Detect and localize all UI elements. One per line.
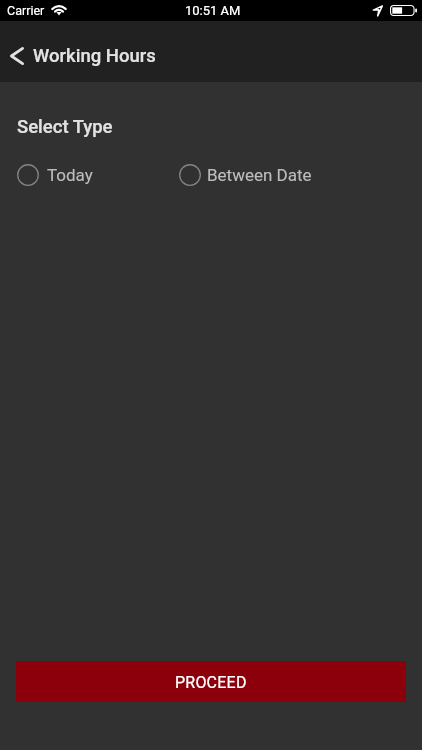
staticText: Between Date — [207, 165, 312, 185]
staticText: Working Hours — [33, 45, 156, 67]
staticText: Select Type — [17, 116, 113, 138]
staticText: 10:51 AM — [185, 3, 241, 18]
button[interactable]: Today — [17, 164, 93, 186]
button[interactable]: Between Date — [179, 164, 312, 186]
staticText: Today — [47, 165, 93, 185]
staticText: PROCEED — [175, 673, 247, 692]
button[interactable]: PROCEED — [16, 661, 406, 702]
button[interactable]: Back — [2, 36, 32, 76]
staticText: Carrier — [7, 3, 45, 18]
